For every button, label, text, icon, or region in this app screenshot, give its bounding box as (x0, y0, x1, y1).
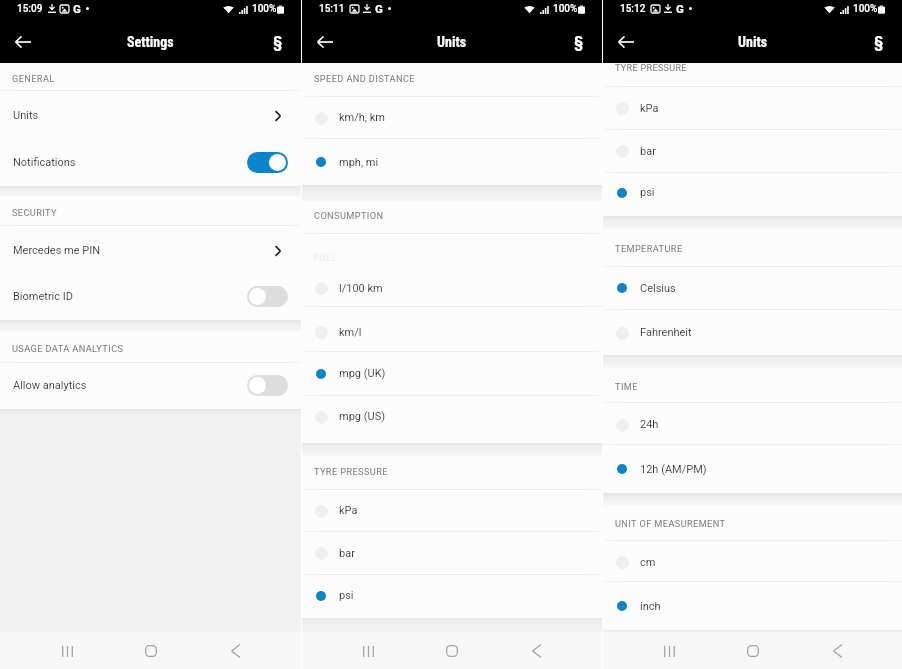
staticText: Allow analytics (13, 379, 87, 392)
button[interactable]: Home (438, 637, 466, 665)
staticText: USAGE DATA ANALYTICS (12, 343, 124, 354)
button[interactable]: kPa (302, 490, 602, 531)
button[interactable]: km/l (302, 307, 602, 351)
staticText: SPEED AND DISTANCE (314, 73, 415, 84)
staticText: kPa (640, 102, 659, 115)
button[interactable]: Units (0, 91, 301, 138)
staticText: kPa (339, 504, 358, 517)
staticText: Notifications (13, 156, 76, 169)
button[interactable]: kPa (603, 87, 902, 129)
staticText: CONSUMPTION (314, 210, 384, 221)
button[interactable]: Legal notice (574, 32, 584, 52)
button[interactable]: cm (603, 541, 902, 581)
button[interactable]: Back (616, 32, 636, 52)
button[interactable]: Allow analytics (0, 363, 301, 409)
button[interactable]: Back (221, 637, 249, 665)
staticText: bar (339, 547, 355, 560)
button[interactable]: inch (603, 582, 902, 630)
button[interactable]: Back (13, 32, 33, 52)
button[interactable]: l/100 km (302, 266, 602, 306)
button[interactable]: Home (739, 637, 767, 665)
staticText: G (375, 2, 383, 15)
button[interactable]: psi (302, 575, 602, 618)
staticText: Units (738, 34, 768, 50)
staticText: Settings (127, 34, 174, 50)
staticText: 15:12 (620, 3, 646, 15)
button[interactable]: Legal notice (273, 32, 283, 52)
button[interactable]: Back (823, 637, 851, 665)
staticText: mpg (UK) (339, 367, 386, 380)
staticText: km/l (339, 326, 362, 339)
staticText: bar (640, 145, 656, 158)
staticText: 15:11 (319, 3, 345, 15)
button[interactable]: bar (603, 130, 902, 172)
staticText: 24h (640, 418, 659, 431)
button[interactable]: Notifications (0, 138, 301, 186)
staticText: psi (339, 589, 354, 602)
staticText: Units (13, 109, 39, 122)
staticText: SECURITY (12, 207, 57, 218)
staticText: inch (640, 600, 661, 613)
staticText: 100% (553, 3, 578, 15)
button[interactable]: mph, mi (302, 139, 602, 185)
button[interactable]: Back (315, 32, 335, 52)
button[interactable]: Fahrenheit (603, 310, 902, 355)
staticText: FUEL (314, 253, 337, 264)
staticText: 100% (853, 3, 878, 15)
button[interactable]: km/h, km (302, 97, 602, 138)
staticText: TYRE PRESSURE (615, 63, 687, 74)
staticText: Biometric ID (13, 290, 73, 303)
button[interactable]: 12h (AM/PM) (603, 445, 902, 493)
staticText: § (874, 32, 884, 52)
staticText: 100% (252, 3, 277, 15)
staticText: GENERAL (12, 73, 55, 84)
button[interactable]: psi (603, 173, 902, 216)
staticText: km/h, km (339, 111, 385, 124)
staticText: cm (640, 556, 656, 569)
staticText: mph, mi (339, 156, 379, 169)
staticText: TYRE PRESSURE (314, 466, 388, 477)
button[interactable]: Home (137, 637, 165, 665)
staticText: Fahrenheit (640, 326, 692, 339)
button[interactable]: Recent apps (354, 637, 382, 665)
staticText: 12h (AM/PM) (640, 463, 707, 476)
staticText: psi (640, 186, 655, 199)
staticText: TEMPERATURE (615, 243, 683, 254)
staticText: § (273, 32, 283, 52)
button[interactable]: 24h (603, 403, 902, 444)
button[interactable]: Recent apps (53, 637, 81, 665)
staticText: Units (437, 34, 467, 50)
button[interactable]: bar (302, 532, 602, 574)
staticText: § (574, 32, 584, 52)
button[interactable]: Recent apps (655, 637, 683, 665)
button[interactable]: Celsius (603, 267, 902, 309)
button[interactable]: mpg (UK) (302, 352, 602, 395)
staticText: TIME (615, 381, 638, 392)
staticText: 15:09 (17, 3, 43, 15)
staticText: Mercedes me PIN (13, 244, 101, 257)
button[interactable]: Back (522, 637, 550, 665)
button[interactable]: Biometric ID (0, 273, 301, 320)
button[interactable]: Legal notice (874, 32, 884, 52)
staticText: G (73, 2, 81, 15)
staticText: l/100 km (339, 282, 383, 295)
staticText: G (676, 2, 684, 15)
button[interactable]: Mercedes me PIN (0, 226, 301, 273)
staticText: UNIT OF MEASUREMENT (615, 518, 726, 529)
staticText: Celsius (640, 282, 676, 295)
staticText: mpg (US) (339, 410, 385, 423)
button[interactable]: mpg (US) (302, 396, 602, 443)
